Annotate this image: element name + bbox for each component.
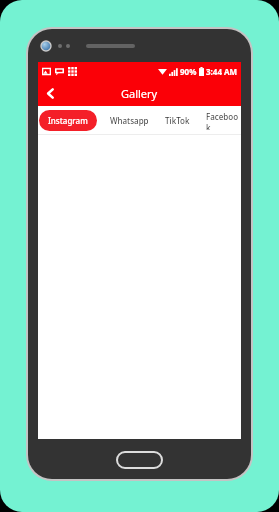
- button[interactable]: Whatsapp: [108, 110, 151, 131]
- button[interactable]: Back: [38, 81, 62, 105]
- staticText: Instagram: [48, 115, 88, 126]
- button[interactable]: Instagram: [39, 110, 97, 131]
- staticText: 90%: [180, 66, 197, 77]
- staticText: TikTok: [165, 115, 190, 126]
- staticText: 3:44 AM: [206, 66, 238, 77]
- button[interactable]: Home: [117, 452, 162, 468]
- staticText: Whatsapp: [110, 115, 149, 126]
- staticText: Facebook: [206, 111, 239, 130]
- button[interactable]: TikTok: [163, 110, 192, 131]
- staticText: Gallery: [121, 86, 158, 101]
- button[interactable]: Facebook: [204, 106, 241, 135]
